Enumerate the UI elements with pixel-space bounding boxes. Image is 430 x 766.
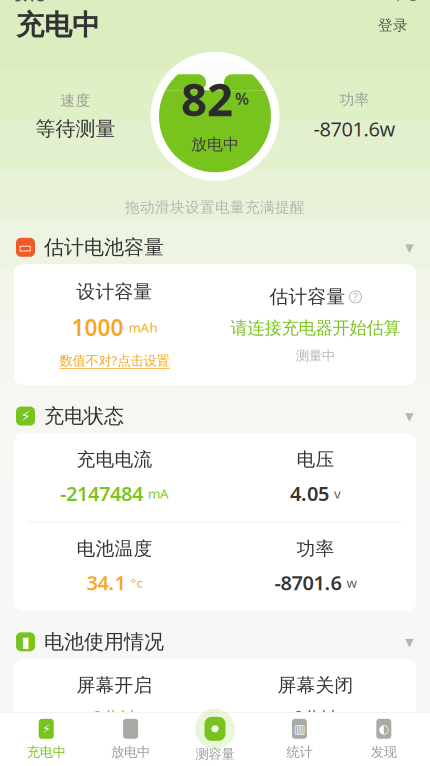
staticText: ◐: [379, 722, 389, 736]
staticText: 测容量: [195, 746, 234, 762]
staticText: 速度: [60, 91, 90, 109]
button[interactable]: 测容量: [173, 710, 257, 766]
staticText: 34.1: [86, 569, 125, 596]
staticText: 请连接充电器开始估算: [230, 317, 400, 339]
staticText: 充电状态: [44, 404, 124, 428]
staticText: 屏幕关闭: [277, 674, 353, 697]
staticText: w: [346, 574, 356, 591]
staticText: 估计容量: [269, 285, 345, 308]
staticText: 放电中: [191, 135, 239, 154]
staticText: 统计: [286, 744, 312, 760]
staticText: 9:18: [14, 0, 45, 6]
staticText: 功率: [296, 537, 334, 560]
staticText: ▭: [18, 239, 32, 256]
staticText: 数值不对?点击设置: [59, 351, 169, 369]
staticText: 充电电流: [76, 448, 152, 471]
staticText: 充电中: [16, 8, 100, 42]
staticText: v: [334, 484, 341, 502]
button[interactable]: ⚡︎: [0, 399, 430, 433]
staticText: 1000: [71, 312, 123, 342]
button[interactable]: ⚡︎: [4, 712, 88, 766]
staticText: 估计电池容量: [44, 235, 164, 260]
staticText: 4.05: [290, 480, 329, 507]
staticText: -8701.6w: [313, 115, 395, 142]
staticText: 电池温度: [76, 537, 152, 560]
staticText: ⚡︎: [20, 408, 30, 424]
staticText: 电压: [296, 448, 334, 471]
staticText: -2147484: [60, 480, 143, 507]
staticText: 0分钟: [293, 706, 337, 729]
staticText: 等待测量: [35, 116, 115, 141]
staticText: 屏幕开启: [76, 674, 152, 697]
staticText: °c: [130, 574, 142, 591]
staticText: ?: [353, 290, 358, 304]
staticText: mA: [148, 484, 169, 502]
staticText: ▮: [21, 633, 29, 650]
staticText: 电池使用情况: [44, 629, 164, 654]
staticText: ▾: [405, 237, 414, 257]
staticText: ▾: [405, 406, 414, 426]
staticText: 发现: [371, 744, 397, 760]
staticText: 充电中: [27, 744, 66, 760]
staticText: 设计容量: [76, 280, 152, 303]
staticText: ▼: [393, 0, 403, 3]
staticText: 拖动滑块设置电量充满提醒: [125, 198, 305, 216]
staticText: -8701.6: [274, 569, 341, 596]
staticText: mAh: [128, 318, 157, 336]
button[interactable]: ▥: [257, 712, 342, 766]
button[interactable]: ◐: [342, 712, 426, 766]
staticText: 0分钟: [92, 706, 136, 729]
staticText: ▾: [405, 632, 414, 652]
staticText: 充电总时间: [167, 745, 262, 766]
button[interactable]: ▭: [0, 230, 430, 264]
staticText: 放电中: [111, 744, 150, 760]
button[interactable]: 登录: [372, 12, 414, 38]
staticText: ⚡︎: [42, 722, 50, 736]
staticText: 测量中: [296, 348, 335, 364]
staticText: ▥: [294, 722, 305, 736]
staticText: 82: [181, 68, 233, 129]
staticText: 登录: [378, 16, 408, 34]
button[interactable]: ▮: [0, 625, 430, 659]
staticText: %: [235, 88, 249, 109]
button[interactable]: [88, 712, 173, 766]
staticText: 功率: [339, 90, 369, 108]
